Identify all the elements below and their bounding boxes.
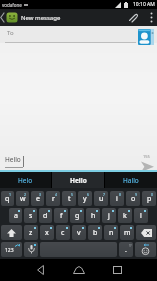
- staticText: t: [68, 194, 71, 204]
- staticText: o: [131, 194, 136, 204]
- staticText: s: [29, 211, 33, 221]
- staticText: u: [99, 194, 104, 204]
- staticText: New message: [21, 14, 61, 22]
- staticText: a: [14, 211, 18, 221]
- staticText: d: [43, 211, 48, 221]
- staticText: 10:10 AM: [133, 1, 155, 8]
- button[interactable]: s: [24, 208, 37, 223]
- staticText: 7: [103, 192, 106, 197]
- button[interactable]: [135, 242, 156, 257]
- button[interactable]: Helo: [0, 172, 51, 188]
- staticText: l: [140, 211, 142, 221]
- button[interactable]: [71, 261, 87, 278]
- button[interactable]: [140, 161, 155, 173]
- staticText: w: [20, 194, 26, 204]
- button[interactable]: v: [72, 225, 86, 240]
- staticText: Hello: [70, 176, 87, 185]
- staticText: g: [75, 211, 80, 221]
- staticText: j: [108, 211, 110, 221]
- button[interactable]: 123: [1, 242, 22, 257]
- button[interactable]: [32, 261, 48, 278]
- button[interactable]: y: [78, 191, 92, 206]
- staticText: v: [77, 228, 81, 238]
- staticText: Hello: [5, 155, 21, 164]
- button[interactable]: Hallo: [105, 172, 157, 188]
- button[interactable]: [109, 261, 125, 278]
- staticText: 4: [55, 192, 58, 197]
- button[interactable]: f: [54, 208, 68, 223]
- button[interactable]: c: [56, 225, 70, 240]
- staticText: .: [125, 245, 127, 255]
- staticText: x: [45, 228, 49, 238]
- button[interactable]: [24, 242, 38, 257]
- button[interactable]: .: [119, 242, 133, 257]
- staticText: c: [61, 228, 65, 238]
- button[interactable]: l: [134, 208, 148, 223]
- staticText: y: [83, 194, 87, 204]
- staticText: b: [93, 228, 98, 238]
- button[interactable]: r: [46, 191, 60, 206]
- button[interactable]: z: [24, 225, 38, 240]
- staticText: !?: [129, 243, 132, 248]
- button[interactable]: p: [142, 191, 156, 206]
- staticText: f: [60, 211, 63, 221]
- staticText: 1: [9, 192, 12, 197]
- button[interactable]: a: [9, 208, 22, 223]
- button[interactable]: g: [70, 208, 84, 223]
- button[interactable]: [40, 242, 117, 257]
- button[interactable]: [0, 9, 18, 26]
- staticText: r: [52, 194, 55, 204]
- button[interactable]: h: [86, 208, 100, 223]
- staticText: 5: [71, 192, 74, 197]
- staticText: 2: [24, 192, 27, 197]
- staticText: z: [29, 228, 33, 238]
- staticText: k: [123, 211, 127, 221]
- button[interactable]: m: [120, 225, 134, 240]
- staticText: m: [124, 228, 131, 238]
- staticText: p: [147, 194, 152, 204]
- staticText: i: [116, 194, 118, 204]
- button[interactable]: Hello: [52, 172, 104, 188]
- button[interactable]: o: [126, 191, 140, 206]
- staticText: e: [36, 194, 40, 204]
- button[interactable]: To: [0, 26, 157, 43]
- staticText: h: [91, 211, 96, 221]
- staticText: 155: [143, 154, 150, 159]
- staticText: vodafone: [2, 2, 22, 8]
- button[interactable]: w: [16, 191, 29, 206]
- staticText: To: [7, 29, 14, 37]
- button[interactable]: i: [110, 191, 124, 206]
- button[interactable]: e: [31, 191, 44, 206]
- button[interactable]: x: [40, 225, 54, 240]
- staticText: 6: [87, 192, 90, 197]
- staticText: 3: [39, 192, 42, 197]
- button[interactable]: [1, 225, 22, 240]
- staticText: 123: [5, 247, 14, 254]
- button[interactable]: [125, 9, 141, 26]
- button[interactable]: [145, 9, 157, 26]
- button[interactable]: b: [88, 225, 102, 240]
- button[interactable]: q: [1, 191, 14, 206]
- staticText: 9: [135, 192, 138, 197]
- button[interactable]: [136, 225, 156, 240]
- button[interactable]: t: [62, 191, 76, 206]
- staticText: 8: [119, 192, 122, 197]
- button[interactable]: d: [39, 208, 52, 223]
- button[interactable]: u: [94, 191, 108, 206]
- button[interactable]: k: [118, 208, 132, 223]
- button[interactable]: j: [102, 208, 116, 223]
- staticText: q: [5, 194, 10, 204]
- staticText: n: [109, 228, 114, 238]
- staticText: Hallo: [123, 176, 139, 185]
- staticText: Helo: [18, 176, 33, 185]
- button[interactable]: [138, 29, 154, 45]
- button[interactable]: n: [104, 225, 118, 240]
- staticText: 0: [151, 192, 154, 197]
